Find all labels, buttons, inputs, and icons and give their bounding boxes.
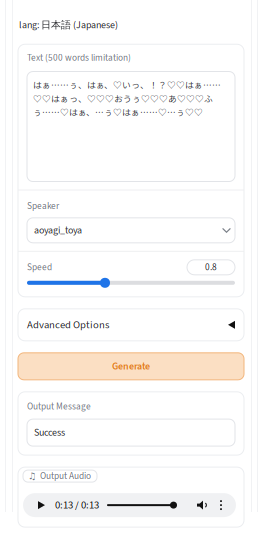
- staticText: はぁ……ぅ、はぁ、♡いっ、！？♡♡はぁ……: [33, 78, 221, 91]
- staticText: Text (500 words limitation): [27, 51, 131, 64]
- staticText: ♡♡はぁっ、♡♡♡おうぅ♡♡♡あ♡♡♡ふ: [33, 92, 213, 105]
- staticText: Advanced Options: [27, 317, 109, 332]
- staticText: Speaker: [27, 199, 59, 213]
- button[interactable]: aoyagi_toya: [27, 218, 235, 243]
- staticText: ぅ……♡はぁ、…ぅ♡はぁ……♡…ぅ♡♡: [33, 106, 203, 118]
- staticText: 0.8: [205, 261, 217, 274]
- button[interactable]: Volume: [192, 495, 212, 515]
- button[interactable]: Generate: [18, 353, 244, 380]
- staticText: ♫: [28, 471, 36, 482]
- button[interactable]: Advanced Options: [18, 309, 244, 341]
- staticText: Success: [34, 425, 65, 440]
- staticText: lang: 日本語 (Japanese): [19, 18, 118, 32]
- staticText: Output Message: [27, 400, 91, 413]
- staticText: aoyagi_toya: [34, 223, 82, 237]
- staticText: Speed: [27, 261, 52, 274]
- staticText: 0:13 / 0:13: [55, 497, 99, 513]
- button[interactable]: Play: [23, 493, 55, 517]
- staticText: Output Audio: [40, 469, 91, 483]
- staticText: Generate: [112, 359, 150, 373]
- button[interactable]: More options: [212, 495, 236, 515]
